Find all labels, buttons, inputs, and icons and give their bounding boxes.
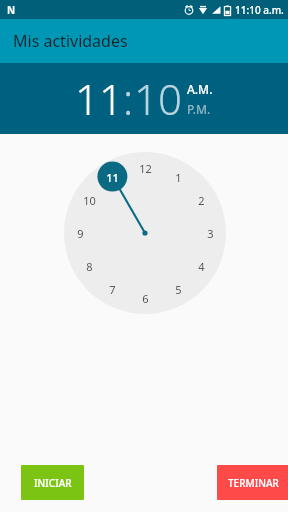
staticText: 10	[83, 193, 96, 208]
staticText: 1	[175, 170, 182, 185]
button[interactable]: 10	[78, 189, 100, 211]
button[interactable]: 10	[134, 70, 182, 127]
staticText: 11	[106, 170, 119, 185]
button[interactable]: 8	[78, 255, 100, 277]
staticText: 7	[109, 282, 116, 297]
button[interactable]: 2	[190, 189, 212, 211]
staticText: 11:10 a.m.	[235, 3, 284, 17]
staticText: 4	[198, 259, 205, 274]
staticText: 2	[198, 193, 205, 208]
button[interactable]: 9	[69, 222, 91, 244]
staticText: :	[123, 70, 134, 127]
staticText: 9	[77, 226, 84, 241]
staticText: INICIAR	[34, 476, 72, 490]
button[interactable]: 4	[190, 255, 212, 277]
button[interactable]: INICIAR	[21, 465, 84, 500]
button[interactable]: 12	[134, 157, 156, 179]
button[interactable]: 1	[167, 166, 189, 188]
button[interactable]: 5	[167, 278, 189, 300]
staticText: TERMINAR	[228, 476, 279, 490]
staticText: 5	[175, 282, 182, 297]
button[interactable]: 11	[75, 70, 123, 127]
button[interactable]: TERMINAR	[217, 465, 288, 500]
staticText: 8	[86, 259, 93, 274]
button[interactable]: A.M.	[187, 81, 213, 97]
button[interactable]: 7	[101, 278, 123, 300]
staticText: N	[7, 3, 16, 17]
staticText: 6	[142, 291, 149, 306]
staticText: 12	[139, 161, 152, 176]
button[interactable]: 6	[134, 287, 156, 309]
staticText: 3	[207, 226, 214, 241]
button[interactable]: 3	[199, 222, 221, 244]
button[interactable]: P.M.	[187, 101, 211, 117]
button[interactable]: 11	[101, 166, 123, 188]
staticText: Mis actividades	[13, 30, 128, 52]
other: Clock dial, 11 o'clock selected	[64, 152, 226, 314]
